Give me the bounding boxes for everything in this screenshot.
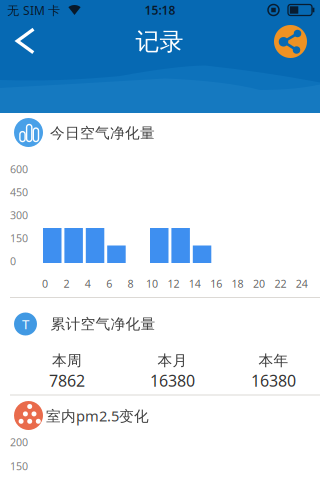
staticText: 6 bbox=[106, 276, 112, 291]
staticText: 12 bbox=[167, 276, 179, 291]
staticText: 累计空气净化量 bbox=[50, 315, 155, 333]
staticText: 150 bbox=[10, 231, 28, 245]
staticText: T bbox=[22, 315, 29, 333]
staticText: 4 bbox=[85, 276, 91, 291]
staticText: 今日空气净化量 bbox=[50, 124, 155, 142]
staticText: 200 bbox=[10, 435, 28, 449]
staticText: 150 bbox=[10, 459, 28, 473]
staticText: 2 bbox=[63, 276, 69, 291]
staticText: 15:18 bbox=[144, 2, 175, 18]
staticText: 450 bbox=[10, 185, 28, 199]
staticText: 22 bbox=[274, 276, 286, 291]
staticText: 10 bbox=[146, 276, 158, 291]
staticText: 室内pm2.5变化 bbox=[46, 406, 149, 425]
staticText: 本年 bbox=[258, 351, 288, 369]
staticText: 本月 bbox=[157, 351, 187, 369]
button[interactable]: 分享 bbox=[274, 25, 307, 58]
button[interactable]: 返回 bbox=[0, 0, 48, 62]
staticText: 8 bbox=[128, 276, 134, 291]
staticText: 无 SIM 卡 bbox=[7, 2, 60, 18]
staticText: 600 bbox=[10, 162, 28, 176]
staticText: 记录 bbox=[135, 27, 183, 56]
staticText: 16 bbox=[210, 276, 222, 291]
staticText: 24 bbox=[296, 276, 308, 291]
staticText: 0 bbox=[10, 254, 16, 268]
staticText: 7862 bbox=[49, 370, 85, 391]
staticText: 0 bbox=[42, 276, 48, 291]
staticText: 本周 bbox=[52, 351, 82, 369]
staticText: 18 bbox=[232, 276, 244, 291]
staticText: 14 bbox=[189, 276, 201, 291]
staticText: 300 bbox=[10, 208, 28, 222]
staticText: 16380 bbox=[150, 370, 195, 391]
staticText: 20 bbox=[253, 276, 265, 291]
staticText: 16380 bbox=[251, 370, 296, 391]
